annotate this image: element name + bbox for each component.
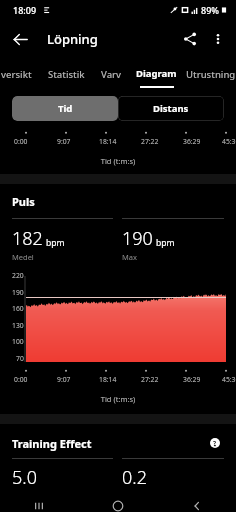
- button[interactable]: versikt: [0, 58, 40, 90]
- staticText: 27:22: [141, 137, 159, 146]
- staticText: 9:07: [57, 137, 71, 146]
- staticText: Puls: [12, 194, 35, 209]
- staticText: Max: [122, 252, 137, 262]
- staticText: Löpning: [47, 30, 98, 48]
- staticText: 18:14: [99, 375, 117, 384]
- button[interactable]: Varv: [92, 58, 130, 90]
- staticText: bpm: [156, 237, 175, 249]
- button[interactable]: Recent apps: [0, 500, 78, 512]
- staticText: 100: [12, 337, 24, 346]
- staticText: 5.0: [12, 465, 37, 490]
- button[interactable]: Back: [157, 500, 236, 512]
- staticText: 190: [12, 288, 24, 297]
- staticText: Utrustning: [186, 68, 236, 81]
- staticText: Tid (t:m:s): [0, 394, 236, 404]
- staticText: 36:29: [183, 137, 201, 146]
- staticText: Distans: [153, 102, 189, 115]
- staticText: 27:22: [141, 375, 159, 384]
- button[interactable]: Back: [6, 25, 34, 53]
- staticText: 45:36: [222, 375, 236, 384]
- button[interactable]: Statistik: [40, 58, 92, 90]
- staticText: 160: [12, 304, 24, 313]
- staticText: 0.2: [122, 465, 147, 490]
- staticText: 45:36: [222, 137, 236, 146]
- button[interactable]: Distans: [118, 96, 224, 121]
- staticText: Tid: [58, 102, 73, 115]
- staticText: Tid (t:m:s): [0, 156, 236, 166]
- button[interactable]: Share: [176, 25, 204, 53]
- button[interactable]: Home: [78, 500, 157, 512]
- staticText: Diagram: [136, 67, 177, 80]
- button[interactable]: Diagram: [130, 58, 182, 90]
- button[interactable]: Help: [206, 434, 224, 452]
- staticText: Training Effect: [12, 436, 92, 451]
- staticText: 0:00: [14, 375, 28, 384]
- staticText: 18:14: [99, 137, 117, 146]
- staticText: versikt: [1, 68, 32, 81]
- staticText: 190: [122, 226, 153, 251]
- staticText: bpm: [46, 237, 65, 249]
- staticText: 9:07: [57, 375, 71, 384]
- staticText: Medel: [12, 252, 34, 262]
- staticText: ?: [213, 439, 217, 448]
- staticText: 0:00: [14, 137, 28, 146]
- staticText: 70: [16, 354, 24, 363]
- staticText: 89%: [201, 4, 219, 16]
- button[interactable]: Tid: [12, 96, 118, 121]
- staticText: 18:09: [13, 4, 37, 16]
- staticText: Statistik: [48, 68, 85, 81]
- staticText: 220: [12, 271, 24, 280]
- staticText: Varv: [101, 68, 122, 81]
- button[interactable]: More options: [204, 25, 232, 53]
- staticText: 182: [12, 226, 43, 251]
- staticText: 130: [12, 321, 24, 330]
- staticText: 36:29: [183, 375, 201, 384]
- button[interactable]: Utrustning: [182, 58, 236, 90]
